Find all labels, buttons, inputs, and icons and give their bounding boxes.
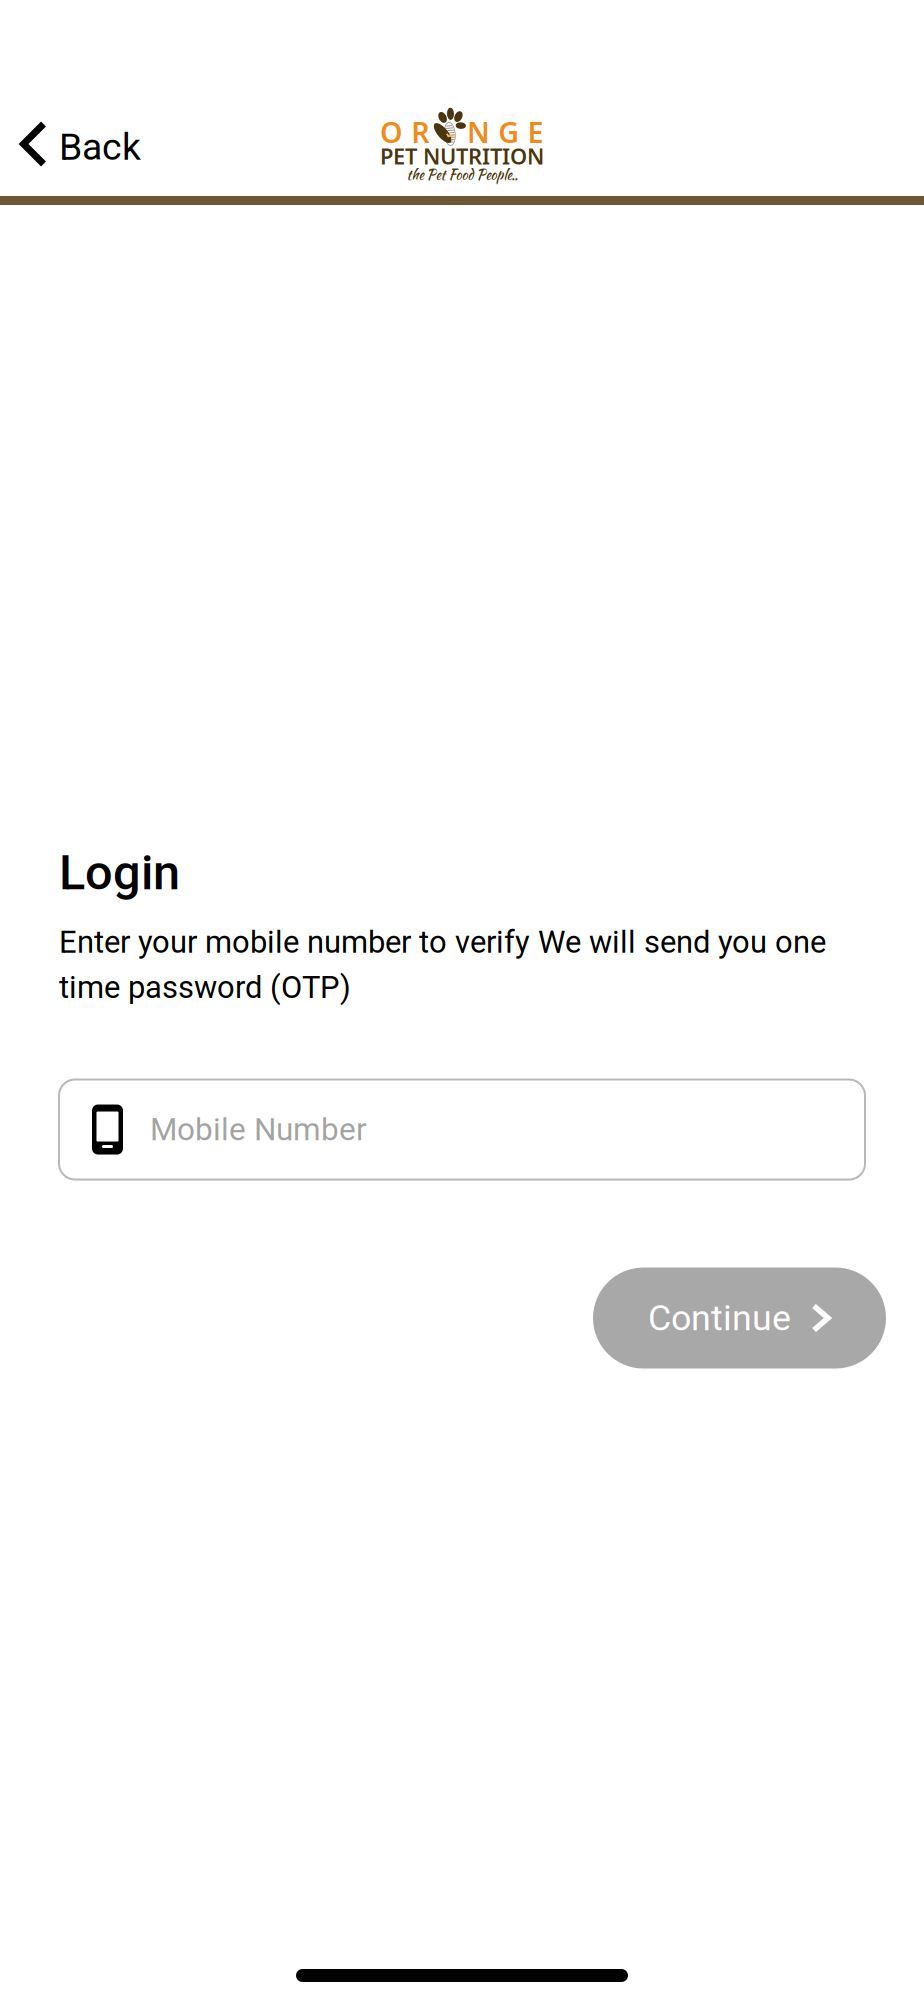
staticText: G [498,112,519,151]
staticText: Continue [648,1297,791,1339]
staticText: the Pet Food People.. [406,165,517,184]
staticText: Login [59,844,180,901]
staticText: Enter your mobile number to verify We wi… [59,924,826,1005]
button[interactable]: Back [1,100,163,188]
staticText: N [467,112,490,151]
staticText: R [411,112,429,151]
button[interactable]: Continue [593,1267,886,1368]
staticText: Back [59,125,141,169]
staticText: O [380,112,403,151]
staticText: PET NUTRITION [380,141,544,171]
staticText: Mobile Number [150,1111,367,1148]
staticText: E [527,112,543,151]
